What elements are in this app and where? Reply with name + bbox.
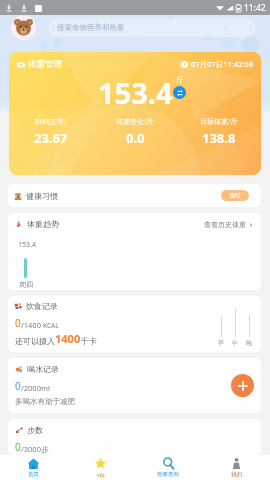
staticText: 中 [232, 339, 238, 347]
staticText: 体重趋势 [27, 219, 59, 229]
staticText: 喝水记录 [27, 364, 59, 374]
button[interactable]: 查看历史体重 [204, 220, 254, 229]
button[interactable]: 健康习惯 [8, 184, 261, 207]
staticText: 138.8 [202, 129, 236, 147]
staticText: /3000步 [21, 444, 49, 454]
staticText: 搜索食物营养和热量 [57, 23, 125, 32]
button[interactable]: 步数 [8, 419, 261, 455]
button[interactable]: 体重变化/斤 [93, 117, 177, 147]
staticText: 查看历史体重 [204, 220, 246, 229]
staticText: 目标体重/斤 [200, 117, 238, 127]
staticText: 体重变化/斤 [116, 117, 154, 127]
staticText: 11:42 [244, 2, 266, 14]
staticText: 晚 [246, 339, 252, 347]
button[interactable]: 0/0 [221, 190, 249, 201]
staticText: KCAL [43, 321, 59, 330]
staticText: 1400 [55, 331, 81, 346]
button[interactable]: Add record [231, 374, 254, 397]
staticText: 斤 [176, 75, 184, 85]
staticText: 体重管理 [28, 59, 62, 70]
button[interactable]: 目标体重/斤 [177, 117, 261, 147]
button[interactable]: 饮食记录 [8, 296, 261, 352]
staticText: /2000ml [21, 383, 50, 393]
staticText: 23.67 [34, 129, 68, 147]
staticText: 健康习惯 [26, 191, 58, 201]
staticText: 多喝水有助于减肥 [15, 397, 75, 406]
staticText: 早 [218, 339, 224, 347]
staticText: 0 [15, 440, 21, 454]
button[interactable]: 我的 [202, 455, 270, 480]
button[interactable]: 早 [218, 316, 224, 347]
button[interactable]: 搜索食物营养和热量 [48, 18, 256, 37]
staticText: 我的 [231, 471, 242, 478]
staticText: 0.0 [126, 129, 145, 147]
staticText: 07月07日11:42:08 [191, 59, 253, 69]
staticText: 步数 [27, 425, 43, 435]
button[interactable]: BMI(正常) [9, 117, 93, 147]
staticText: 饮食记录 [26, 301, 58, 311]
staticText: 0 [15, 379, 21, 393]
staticText: 0/0 [230, 191, 240, 200]
staticText: 153.4 [98, 73, 173, 112]
button[interactable]: 中 [232, 309, 238, 347]
button[interactable]: 热量查询 [134, 455, 202, 480]
staticText: 周四 [19, 280, 33, 289]
staticText: 0 [15, 316, 21, 330]
staticText: vip [97, 471, 105, 478]
button[interactable]: Profile [11, 15, 36, 40]
button[interactable]: 体重趋势 [8, 213, 261, 290]
button[interactable]: 晚 [246, 315, 252, 347]
staticText: 还可以摄入 [15, 336, 55, 346]
button[interactable]: 首页 [0, 455, 67, 480]
staticText: 153.4 [18, 240, 36, 250]
button[interactable]: 喝水记录 [8, 358, 261, 413]
button[interactable]: vip [67, 455, 134, 480]
button[interactable]: Switch weight unit [173, 86, 186, 99]
staticText: BMI(正常) [35, 117, 67, 127]
staticText: /1400 [21, 320, 43, 330]
staticText: 首页 [28, 471, 39, 478]
button[interactable]: 体重管理 [9, 52, 261, 175]
staticText: 热量查询 [157, 471, 179, 478]
staticText: 千卡 [81, 336, 97, 346]
